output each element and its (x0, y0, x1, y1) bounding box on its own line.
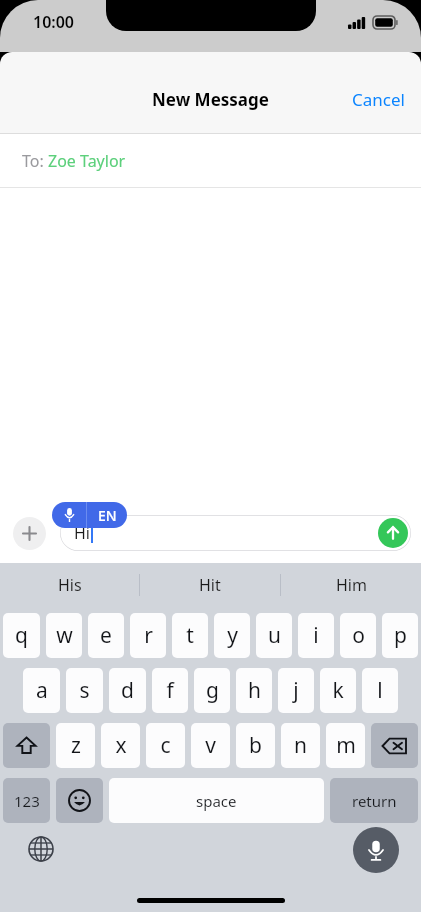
staticText: f (166, 676, 174, 705)
staticText: w (56, 621, 73, 650)
button[interactable]: Dictation (353, 827, 399, 873)
staticText: i (313, 621, 319, 650)
button[interactable]: Hi (60, 515, 411, 551)
staticText: Hit (199, 574, 221, 596)
staticText: c (160, 731, 171, 760)
button[interactable]: Hit (140, 563, 280, 607)
button[interactable]: d (109, 668, 146, 713)
staticText: q (15, 621, 28, 650)
staticText: p (394, 621, 407, 650)
staticText: z (71, 731, 81, 760)
staticText: o (352, 621, 365, 650)
staticText: v (205, 731, 216, 760)
staticText: t (186, 621, 194, 650)
staticText: x (115, 731, 127, 760)
staticText: b (249, 731, 262, 760)
staticText: New Message (152, 88, 269, 111)
staticText: 10:00 (33, 11, 75, 33)
staticText: space (196, 791, 237, 811)
staticText: Cancel (352, 88, 405, 111)
button[interactable]: Shift (3, 723, 50, 768)
button[interactable]: e (88, 613, 124, 658)
staticText: n (294, 731, 307, 760)
button[interactable]: Add attachment (13, 517, 46, 550)
button[interactable]: To: (0, 134, 421, 188)
button[interactable]: z (56, 723, 95, 768)
button[interactable]: y (214, 613, 250, 658)
button[interactable]: j (278, 668, 314, 713)
button[interactable]: return (330, 778, 418, 823)
staticText: m (336, 731, 356, 760)
button[interactable]: 123 (3, 778, 50, 823)
button[interactable]: Him (281, 563, 421, 607)
button[interactable]: Emoji (56, 778, 103, 823)
button[interactable]: His (0, 563, 139, 607)
button[interactable]: v (191, 723, 230, 768)
button[interactable]: i (298, 613, 334, 658)
staticText: Him (336, 574, 367, 596)
staticText: s (79, 676, 90, 705)
button[interactable]: h (236, 668, 272, 713)
button[interactable]: x (101, 723, 140, 768)
staticText: u (268, 621, 281, 650)
button[interactable]: k (320, 668, 356, 713)
button[interactable]: p (382, 613, 418, 658)
button[interactable]: t (172, 613, 208, 658)
button[interactable]: Change keyboard language (26, 834, 56, 864)
staticText: k (332, 676, 344, 705)
button[interactable]: n (281, 723, 320, 768)
button[interactable]: Cancel (336, 80, 421, 119)
staticText: To: (22, 150, 48, 172)
staticText: j (293, 676, 299, 705)
button[interactable]: Backspace (371, 723, 418, 768)
button[interactable]: space (109, 778, 324, 823)
button[interactable]: c (146, 723, 185, 768)
staticText: Hi (74, 522, 90, 544)
button[interactable]: r (130, 613, 166, 658)
staticText: His (58, 574, 82, 596)
button[interactable]: Send (378, 518, 408, 548)
staticText: 123 (14, 791, 40, 811)
button[interactable]: o (340, 613, 376, 658)
button[interactable]: b (236, 723, 275, 768)
button[interactable]: l (362, 668, 398, 713)
button[interactable]: g (194, 668, 230, 713)
staticText: return (352, 791, 397, 811)
staticText: h (248, 676, 261, 705)
button[interactable]: f (152, 668, 188, 713)
button[interactable]: q (3, 613, 40, 658)
button[interactable]: s (66, 668, 103, 713)
staticText: l (377, 676, 383, 705)
button[interactable]: w (46, 613, 82, 658)
staticText: a (36, 676, 48, 705)
button[interactable]: a (23, 668, 60, 713)
staticText: r (144, 621, 153, 650)
staticText: e (100, 621, 112, 650)
staticText: g (206, 676, 219, 705)
staticText: Zoe Taylor (48, 150, 126, 172)
staticText: EN (98, 506, 117, 525)
button[interactable]: EN (52, 502, 127, 528)
button[interactable]: u (256, 613, 292, 658)
staticText: y (227, 621, 238, 650)
button[interactable]: m (326, 723, 365, 768)
staticText: d (121, 676, 134, 705)
